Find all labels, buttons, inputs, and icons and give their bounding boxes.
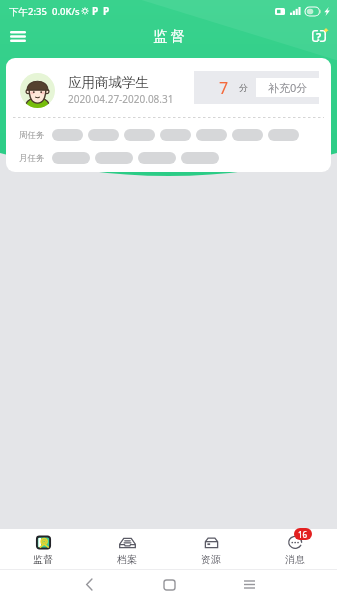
staticText: 7 — [219, 77, 229, 99]
button[interactable]: 资源 — [169, 529, 253, 569]
staticText: 消息 — [285, 553, 305, 566]
staticText: 监 督 — [153, 26, 185, 45]
staticText: 档案 — [117, 553, 137, 566]
staticText: ? — [316, 29, 322, 44]
staticText: 0.0K/s — [52, 5, 80, 18]
button[interactable]: Recents — [209, 569, 289, 600]
staticText: 周任务 — [19, 130, 45, 141]
staticText: P — [103, 4, 110, 18]
button[interactable]: Menu — [2, 20, 34, 52]
staticText: P — [92, 4, 99, 18]
staticText: 监督 — [33, 553, 53, 566]
staticText: 资源 — [201, 553, 221, 566]
staticText: 分 — [239, 82, 248, 93]
staticText: 应用商城学生 — [68, 74, 149, 91]
button[interactable]: Help — [305, 22, 333, 50]
button[interactable]: 16 — [253, 529, 337, 569]
button[interactable]: 监督 — [0, 529, 85, 569]
button[interactable]: Home — [129, 569, 209, 600]
button[interactable]: 补充0分 — [256, 78, 319, 97]
staticText: 月任务 — [19, 153, 45, 164]
button[interactable]: 应用商城学生 — [6, 58, 331, 172]
staticText: 16 — [298, 529, 308, 540]
button[interactable]: Back — [49, 569, 129, 600]
staticText: 下午2:35 — [9, 5, 47, 18]
button[interactable]: 档案 — [85, 529, 169, 569]
staticText: 补充0分 — [268, 80, 308, 95]
staticText: 2020.04.27-2020.08.31 — [68, 92, 174, 106]
